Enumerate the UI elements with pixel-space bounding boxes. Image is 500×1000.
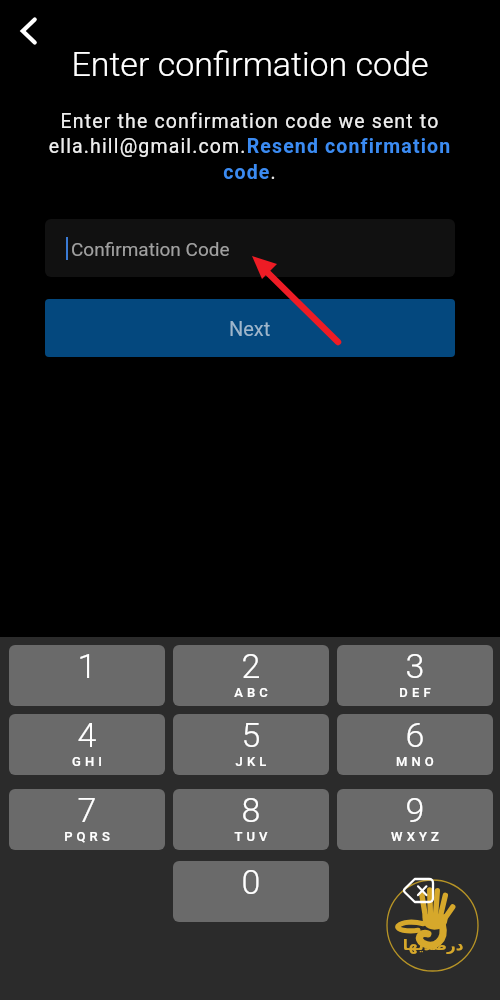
button[interactable]: 6: [337, 714, 493, 775]
staticText: 5: [173, 715, 329, 755]
button[interactable]: 8: [173, 789, 329, 850]
button[interactable]: 1: [9, 645, 165, 706]
button[interactable]: Backspace: [395, 867, 441, 913]
staticText: 0: [173, 862, 329, 902]
staticText: Enter confirmation code: [0, 44, 500, 84]
staticText: 3: [337, 646, 493, 686]
staticText: Next: [229, 317, 271, 340]
staticText: 2: [173, 646, 329, 686]
staticText: درصدیها: [396, 936, 470, 953]
button[interactable]: 5: [173, 714, 329, 775]
staticText: 6: [337, 715, 493, 755]
staticText: PQRS: [11, 829, 165, 844]
button[interactable]: Back: [4, 6, 54, 56]
staticText: 4: [9, 715, 165, 755]
button[interactable]: 4: [9, 714, 165, 775]
staticText: 8: [173, 790, 329, 830]
staticText: 7: [9, 790, 165, 830]
button[interactable]: 2: [173, 645, 329, 706]
staticText: DEF: [339, 685, 493, 700]
button[interactable]: 7: [9, 789, 165, 850]
button[interactable]: 9: [337, 789, 493, 850]
button[interactable]: Confirmation Code: [45, 219, 455, 277]
staticText: ABC: [175, 685, 329, 700]
staticText: Confirmation Code: [71, 238, 230, 260]
button[interactable]: 0: [173, 861, 329, 922]
button[interactable]: Next: [45, 299, 455, 357]
staticText: 1: [9, 646, 165, 686]
staticText: GHI: [11, 754, 165, 769]
staticText: Enter the confirmation code we sent to e…: [43, 110, 457, 184]
button[interactable]: 3: [337, 645, 493, 706]
staticText: 9: [337, 790, 493, 830]
staticText: MNO: [339, 754, 493, 769]
staticText: JKL: [175, 754, 329, 769]
staticText: TUV: [175, 829, 329, 844]
staticText: WXYZ: [339, 829, 493, 844]
